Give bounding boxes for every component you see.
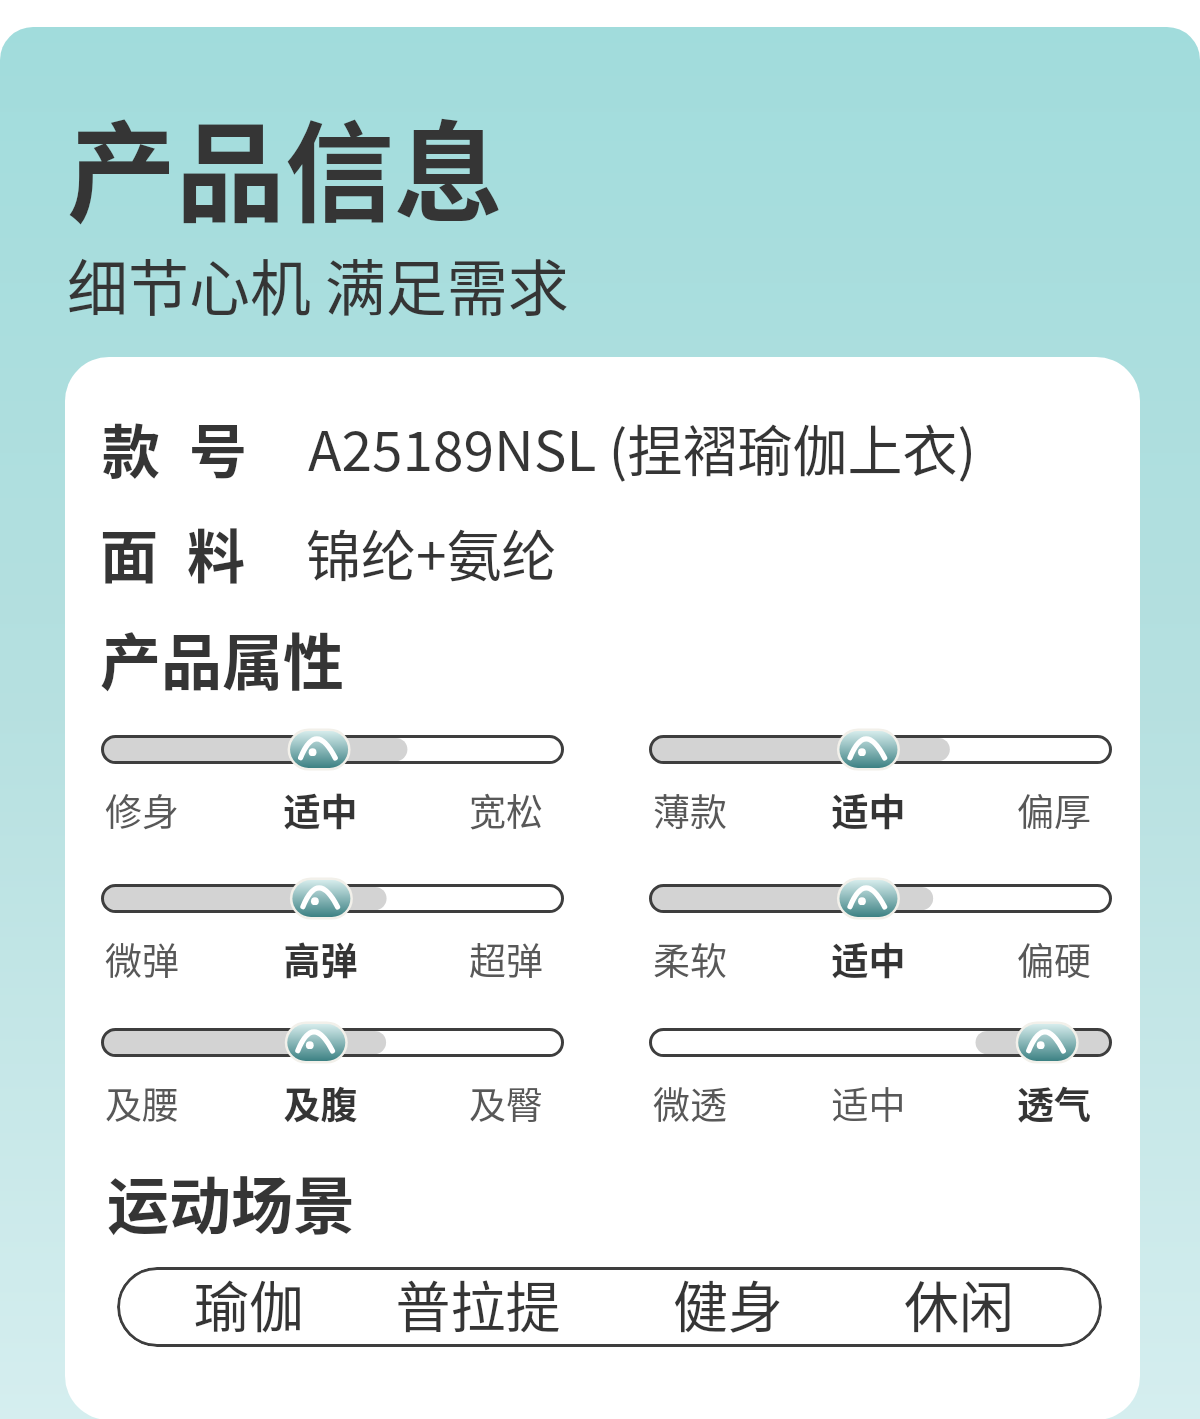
- staticText: 普拉提: [368, 1267, 588, 1343]
- staticText: 高弹: [89, 932, 552, 986]
- staticText: 适中: [637, 783, 1100, 837]
- staticText: 款 号: [102, 406, 248, 490]
- button[interactable]: 适中: [649, 886, 1112, 996]
- staticText: 及腰: [105, 1076, 179, 1130]
- staticText: 锦纶+氨纶: [306, 512, 557, 592]
- staticText: 面 料: [100, 511, 246, 595]
- button[interactable]: 适中: [649, 1030, 1112, 1140]
- staticText: 修身: [105, 783, 179, 837]
- button[interactable]: 高弹: [101, 886, 564, 996]
- staticText: 适中: [89, 783, 552, 837]
- staticText: 柔软: [653, 932, 727, 986]
- staticText: 适中: [637, 1076, 1100, 1130]
- staticText: 运动场景: [107, 1157, 356, 1247]
- staticText: 适中: [637, 932, 1100, 986]
- staticText: 微弹: [105, 932, 179, 986]
- staticText: 细节心机 满足需求: [67, 240, 569, 328]
- staticText: 健身: [618, 1267, 838, 1343]
- button[interactable]: 及腹: [101, 1030, 564, 1140]
- staticText: 透气: [628, 1076, 1091, 1130]
- staticText: 产品信息: [67, 87, 503, 245]
- staticText: 休闲: [849, 1267, 1069, 1343]
- staticText: 微透: [653, 1076, 727, 1130]
- staticText: 及腹: [89, 1076, 552, 1130]
- staticText: 产品属性: [100, 614, 345, 702]
- staticText: 偏硬: [628, 932, 1091, 986]
- staticText: 宽松: [80, 783, 543, 837]
- staticText: 瑜伽: [139, 1267, 359, 1343]
- staticText: 偏厚: [628, 783, 1091, 837]
- staticText: 超弹: [80, 932, 543, 986]
- button[interactable]: 瑜伽: [117, 1267, 1102, 1347]
- staticText: 薄款: [653, 783, 727, 837]
- staticText: A25189NSL (捏褶瑜伽上衣): [308, 407, 976, 487]
- button[interactable]: 适中: [101, 737, 564, 847]
- button[interactable]: 适中: [649, 737, 1112, 847]
- staticText: 及臀: [80, 1076, 543, 1130]
